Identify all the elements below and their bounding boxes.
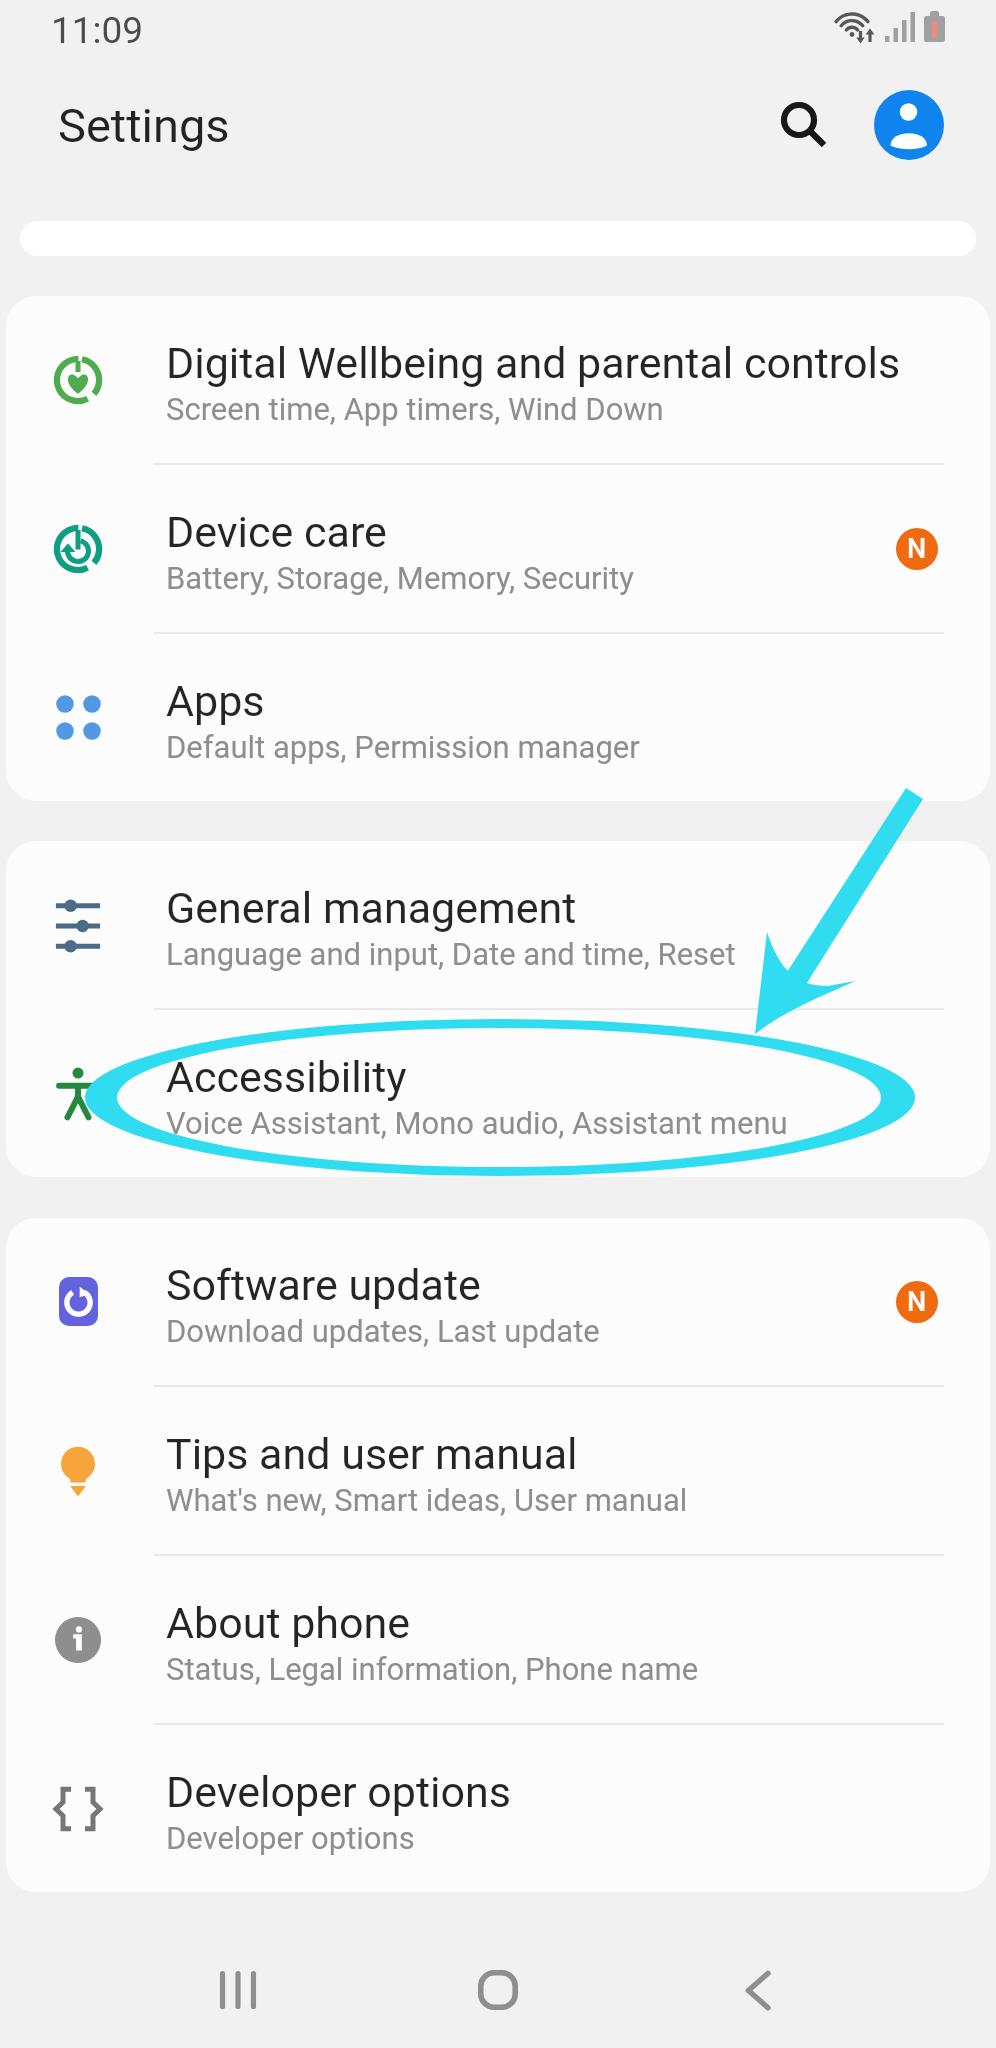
button[interactable]: Apps (6, 634, 990, 801)
button[interactable]: Software update (6, 1218, 990, 1387)
staticText: 11:09 (51, 9, 144, 52)
button[interactable]: Back (717, 1950, 797, 2030)
staticText: Apps (166, 676, 265, 726)
staticText: Software update (166, 1260, 481, 1310)
button[interactable]: Search (768, 86, 840, 158)
button[interactable]: Samsung account (874, 90, 944, 160)
staticText: Digital Wellbeing and parental controls (166, 338, 901, 388)
staticText: About phone (166, 1598, 411, 1648)
staticText: Download updates, Last update (166, 1313, 600, 1349)
staticText: Status, Legal information, Phone name (166, 1651, 699, 1687)
button[interactable]: Digital Wellbeing and parental controls (6, 296, 990, 465)
button[interactable]: General management (6, 841, 990, 1010)
button[interactable]: Home (458, 1950, 538, 2030)
staticText: Accessibility (166, 1052, 407, 1102)
button[interactable]: Accessibility (6, 1010, 990, 1177)
staticText: N (907, 1286, 927, 1318)
staticText: Language and input, Date and time, Reset (166, 936, 736, 972)
button[interactable]: Tips and user manual (6, 1387, 990, 1556)
staticText: Battery, Storage, Memory, Security (166, 560, 634, 596)
staticText: Default apps, Permission manager (166, 729, 640, 765)
staticText: Screen time, App timers, Wind Down (166, 391, 664, 427)
button[interactable]: Device care (6, 465, 990, 634)
button[interactable]: Recent apps (198, 1950, 278, 2030)
staticText: Tips and user manual (166, 1429, 578, 1479)
staticText: Voice Assistant, Mono audio, Assistant m… (166, 1105, 788, 1141)
button[interactable]: Developer options (6, 1725, 990, 1892)
staticText: Settings (58, 98, 230, 153)
staticText: General management (166, 883, 577, 933)
staticText: Developer options (166, 1767, 511, 1817)
staticText: What's new, Smart ideas, User manual (166, 1482, 688, 1518)
button[interactable]: About phone (6, 1556, 990, 1725)
staticText: N (907, 533, 927, 565)
staticText: Device care (166, 507, 387, 557)
staticText: Developer options (166, 1820, 415, 1856)
